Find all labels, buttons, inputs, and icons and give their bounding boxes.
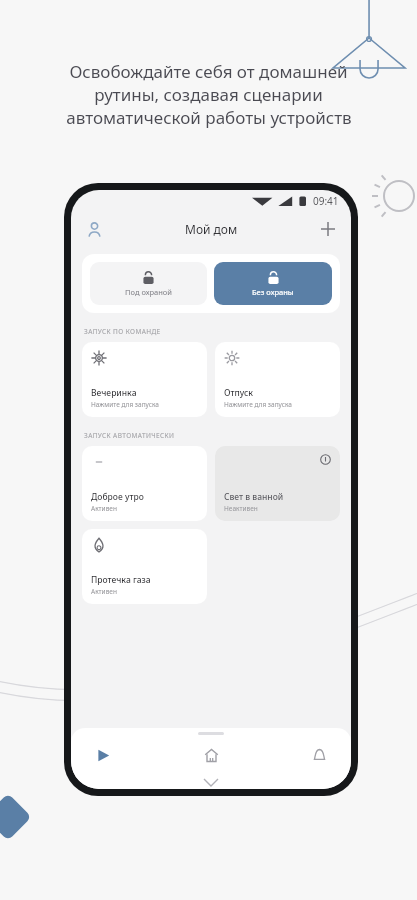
button[interactable]: Протечка газа (82, 529, 207, 604)
button[interactable]: Профиль (81, 216, 107, 242)
button[interactable]: Дом (195, 739, 227, 771)
staticText: рутины, создавая сценарии (94, 83, 323, 106)
button[interactable]: Добавить (315, 216, 341, 242)
staticText: Доброе утро (91, 491, 144, 503)
button[interactable]: Доброе утро (82, 446, 207, 521)
staticText: Нажмите для запуска (224, 400, 292, 409)
staticText: Активен (91, 587, 117, 596)
staticText: Освобождайте себя от домашней (69, 60, 348, 83)
staticText: автоматической работы устройств (66, 106, 352, 129)
staticText: ЗАПУСК ПО КОМАНДЕ (84, 327, 161, 336)
staticText: ЗАПУСК АВТОМАТИЧЕСКИ (84, 431, 175, 440)
button[interactable]: Свет в ванной (215, 446, 340, 521)
button[interactable]: Под охраной (90, 262, 207, 305)
button[interactable]: Сценарии (87, 739, 119, 771)
staticText: Активен (91, 504, 117, 513)
staticText: Отпуск (224, 387, 254, 399)
button[interactable]: Отпуск (215, 342, 340, 417)
staticText: 09:41 (313, 194, 339, 208)
staticText: Мой дом (185, 221, 238, 237)
button[interactable]: Уведомления (303, 739, 335, 771)
button[interactable]: Вечеринка (82, 342, 207, 417)
staticText: Неактивен (224, 504, 258, 513)
staticText: Протечка газа (91, 574, 151, 586)
button[interactable]: Без охраны (214, 262, 332, 305)
staticText: Нажмите для запуска (91, 400, 159, 409)
staticText: Под охраной (125, 287, 172, 297)
staticText: Свет в ванной (224, 491, 284, 503)
staticText: Без охраны (252, 287, 294, 297)
staticText: Вечеринка (91, 387, 137, 399)
